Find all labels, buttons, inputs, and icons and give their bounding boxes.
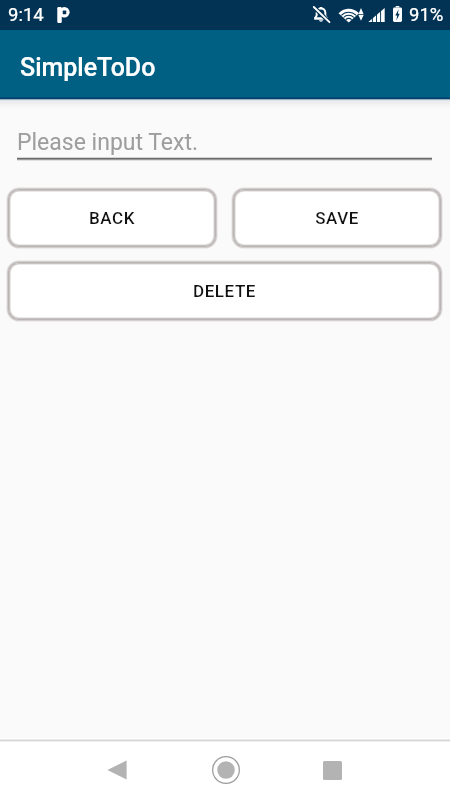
- staticText: SimpleToDo: [20, 53, 156, 82]
- staticText: 91%: [409, 4, 444, 26]
- staticText: SAVE: [315, 208, 359, 228]
- staticText: Please input Text.: [17, 129, 199, 156]
- staticText: DELETE: [193, 281, 256, 301]
- button[interactable]: Back: [80, 746, 153, 794]
- staticText: BACK: [89, 208, 135, 228]
- staticText: 9:14: [8, 4, 44, 26]
- button[interactable]: Recent apps: [296, 746, 369, 794]
- button[interactable]: Please input Text.: [17, 124, 432, 160]
- button[interactable]: BACK: [7, 188, 217, 248]
- button[interactable]: DELETE: [7, 261, 442, 321]
- button[interactable]: SAVE: [232, 188, 442, 248]
- button[interactable]: Home: [189, 746, 262, 794]
